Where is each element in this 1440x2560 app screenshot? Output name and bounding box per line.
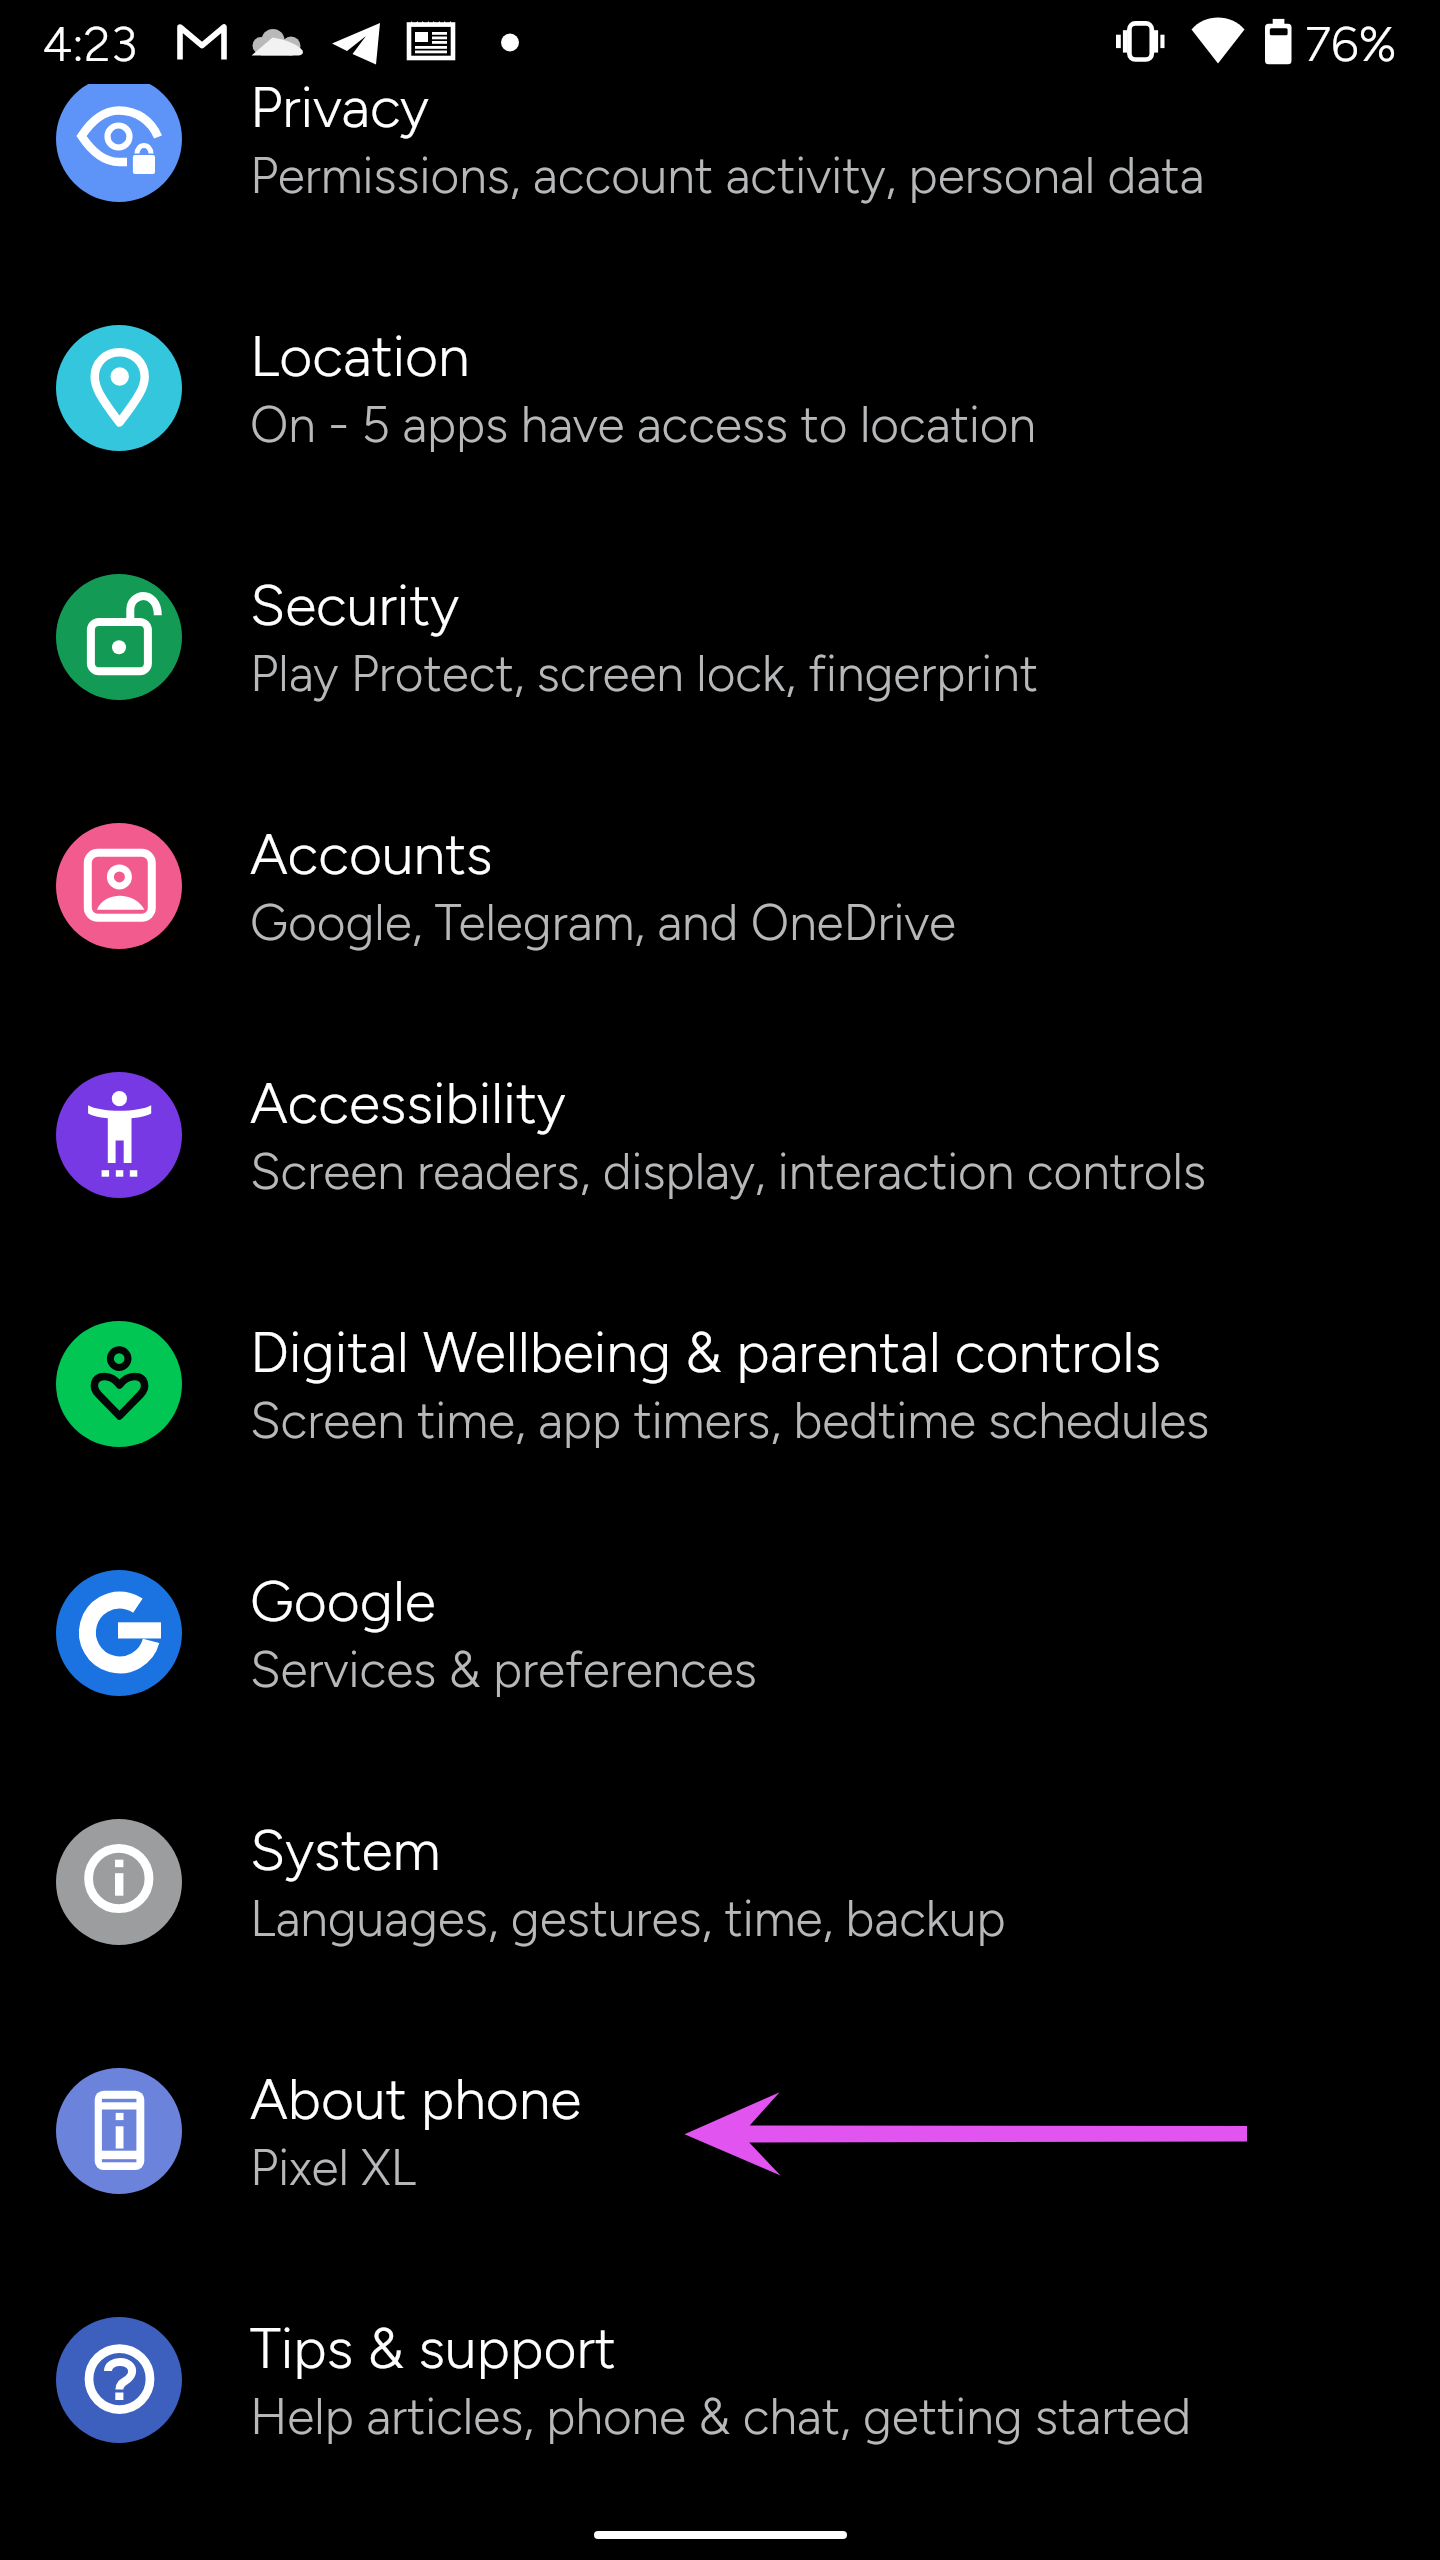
button[interactable]: Tips & support (0, 2255, 1440, 2504)
staticText: 76% (1305, 14, 1397, 73)
staticText: 4:23 (42, 14, 138, 73)
button[interactable]: Privacy (0, 14, 1440, 263)
staticText: Security (250, 571, 460, 639)
other: Privacy (56, 76, 182, 202)
staticText: Help articles, phone & chat, getting sta… (250, 2387, 1192, 2447)
button[interactable]: Security (0, 512, 1440, 761)
staticText: Tips & support (250, 2314, 616, 2382)
other: System (56, 1819, 182, 1945)
staticText: Location (250, 322, 470, 390)
other: Accounts (56, 823, 182, 949)
staticText: Play Protect, screen lock, fingerprint (250, 644, 1038, 704)
staticText: Google, Telegram, and OneDrive (250, 893, 956, 953)
button[interactable]: Google (0, 1508, 1440, 1757)
other: About phone (56, 2068, 182, 2194)
staticText: Accounts (250, 820, 493, 888)
staticText: Permissions, account activity, personal … (250, 146, 1205, 206)
staticText: Pixel XL (250, 2138, 416, 2198)
staticText: Languages, gestures, time, backup (250, 1889, 1006, 1949)
button[interactable]: Digital Wellbeing & parental controls (0, 1259, 1440, 1508)
other: Security (56, 574, 182, 700)
button[interactable]: System (0, 1757, 1440, 2006)
other: Location (56, 325, 182, 451)
staticText: About phone (250, 2065, 582, 2133)
button[interactable]: Accessibility (0, 1010, 1440, 1259)
staticText: Digital Wellbeing & parental controls (250, 1318, 1162, 1386)
other: Tips & support (56, 2317, 182, 2443)
staticText: On - 5 apps have access to location (250, 395, 1037, 455)
staticText: System (250, 1816, 441, 1884)
staticText: Screen readers, display, interaction con… (250, 1142, 1207, 1202)
staticText: Google (250, 1567, 436, 1635)
staticText: Screen time, app timers, bedtime schedul… (250, 1391, 1210, 1451)
staticText: Accessibility (250, 1069, 566, 1137)
other: Accessibility (56, 1072, 182, 1198)
button[interactable]: About phone (0, 2006, 1440, 2255)
button[interactable]: Location (0, 263, 1440, 512)
other: Google (56, 1570, 182, 1696)
button[interactable]: Accounts (0, 761, 1440, 1010)
staticText: Privacy (250, 73, 429, 141)
staticText: Services & preferences (250, 1640, 757, 1700)
other: Digital Wellbeing & parental controls (56, 1321, 182, 1447)
